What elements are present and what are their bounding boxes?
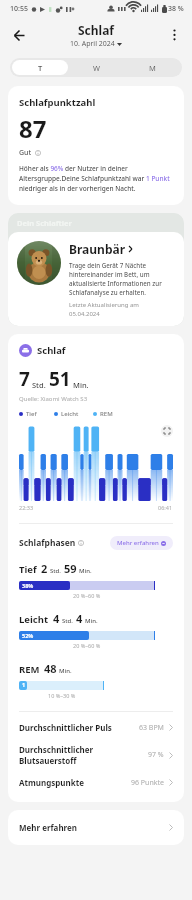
staticText: Gut — [19, 148, 32, 158]
staticText: 48 — [44, 661, 57, 676]
staticText: Quelle: Xiaomi Watch S3 — [19, 395, 88, 403]
staticText: Min. — [73, 380, 89, 390]
staticText: 7 — [19, 366, 30, 392]
staticText: 10:55 — [10, 4, 28, 14]
staticText: 22:33 — [19, 504, 34, 511]
button[interactable]: Mehr erfahren — [110, 536, 173, 550]
staticText: Tief — [19, 563, 37, 576]
staticText: Atmungspunkte — [19, 777, 131, 788]
staticText: T — [38, 63, 43, 73]
button[interactable]: Schlafpunktzahl — [8, 86, 184, 205]
button[interactable]: Mehr Optionen — [164, 25, 184, 45]
staticText: 2 — [41, 561, 48, 576]
staticText: Höher als 96% der Nutzer in deiner Alter… — [19, 164, 173, 193]
staticText: Schlafpunktzahl — [19, 96, 96, 109]
staticText: Schlaf — [78, 22, 115, 38]
button[interactable]: M — [124, 60, 180, 75]
staticText: Std. — [62, 617, 73, 625]
staticText: Min. — [85, 617, 98, 625]
staticText: Leicht — [61, 410, 79, 418]
staticText: 4 — [53, 611, 60, 626]
staticText: Std. — [32, 380, 46, 390]
staticText: 87 — [19, 112, 47, 145]
staticText: 63 BPM — [139, 723, 164, 733]
staticText: 51 — [49, 366, 71, 392]
staticText: Durchschnittlicher Puls — [19, 722, 139, 733]
staticText: Schlafphasen — [19, 537, 76, 549]
button[interactable]: Mehr erfahren — [8, 810, 184, 845]
staticText: REM — [100, 410, 113, 418]
staticText: 06:41 — [158, 504, 173, 511]
staticText: Trage dein Gerät 7 Nächte hintereinander… — [69, 261, 175, 297]
staticText: Min. — [59, 667, 72, 675]
staticText: Leicht — [19, 613, 49, 626]
staticText: 20 %–60 % — [73, 642, 101, 649]
button[interactable]: Dein Schlaftier — [8, 213, 184, 326]
staticText: Dein Schlaftier — [17, 218, 72, 228]
button[interactable]: Durchschnittlicher Puls — [19, 722, 173, 733]
staticText: Std. — [50, 567, 61, 575]
staticText: Braunbär — [69, 241, 126, 257]
button[interactable]: 10. April 2024 — [70, 39, 122, 49]
staticText: 59 — [64, 561, 77, 576]
staticText: 10% — [22, 681, 27, 690]
staticText: M — [149, 63, 156, 73]
staticText: Mehr erfahren — [19, 822, 169, 833]
staticText: 97 % — [148, 750, 164, 760]
staticText: 96 Punkte — [131, 778, 164, 788]
staticText: Tief — [26, 410, 37, 418]
staticText: 38 % — [168, 4, 184, 14]
button[interactable]: W — [68, 60, 124, 75]
staticText: W — [93, 63, 100, 73]
staticText: Mehr erfahren — [117, 539, 159, 547]
button[interactable]: Vollbild — [161, 425, 173, 437]
button[interactable]: Durchschnittlicher Blutsauerstoff — [19, 744, 173, 766]
staticText: Min. — [79, 567, 92, 575]
staticText: Letzte Aktualisierung am 05.04.2024 — [69, 301, 139, 317]
staticText: 20 %–60 % — [73, 592, 101, 599]
button[interactable]: Atmungspunkte — [19, 777, 173, 788]
button[interactable]: T — [12, 60, 68, 75]
staticText: 4 — [76, 611, 83, 626]
staticText: 10. April 2024 — [70, 39, 115, 49]
button[interactable]: Schlaf — [19, 344, 66, 357]
staticText: 10 %–30 % — [48, 692, 76, 699]
staticText: 38% — [22, 582, 34, 589]
staticText: 52% — [22, 632, 34, 639]
staticText: Durchschnittlicher Blutsauerstoff — [19, 744, 148, 766]
button[interactable]: Zurück — [8, 24, 30, 46]
staticText: Schlaf — [37, 344, 66, 357]
staticText: REM — [19, 663, 40, 676]
